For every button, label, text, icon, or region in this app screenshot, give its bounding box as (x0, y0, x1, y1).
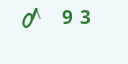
other: Trending up (20, 6, 44, 30)
button[interactable]: Trending up (0, 0, 128, 64)
staticText: 3 (80, 4, 91, 30)
staticText: 9 (62, 4, 73, 30)
